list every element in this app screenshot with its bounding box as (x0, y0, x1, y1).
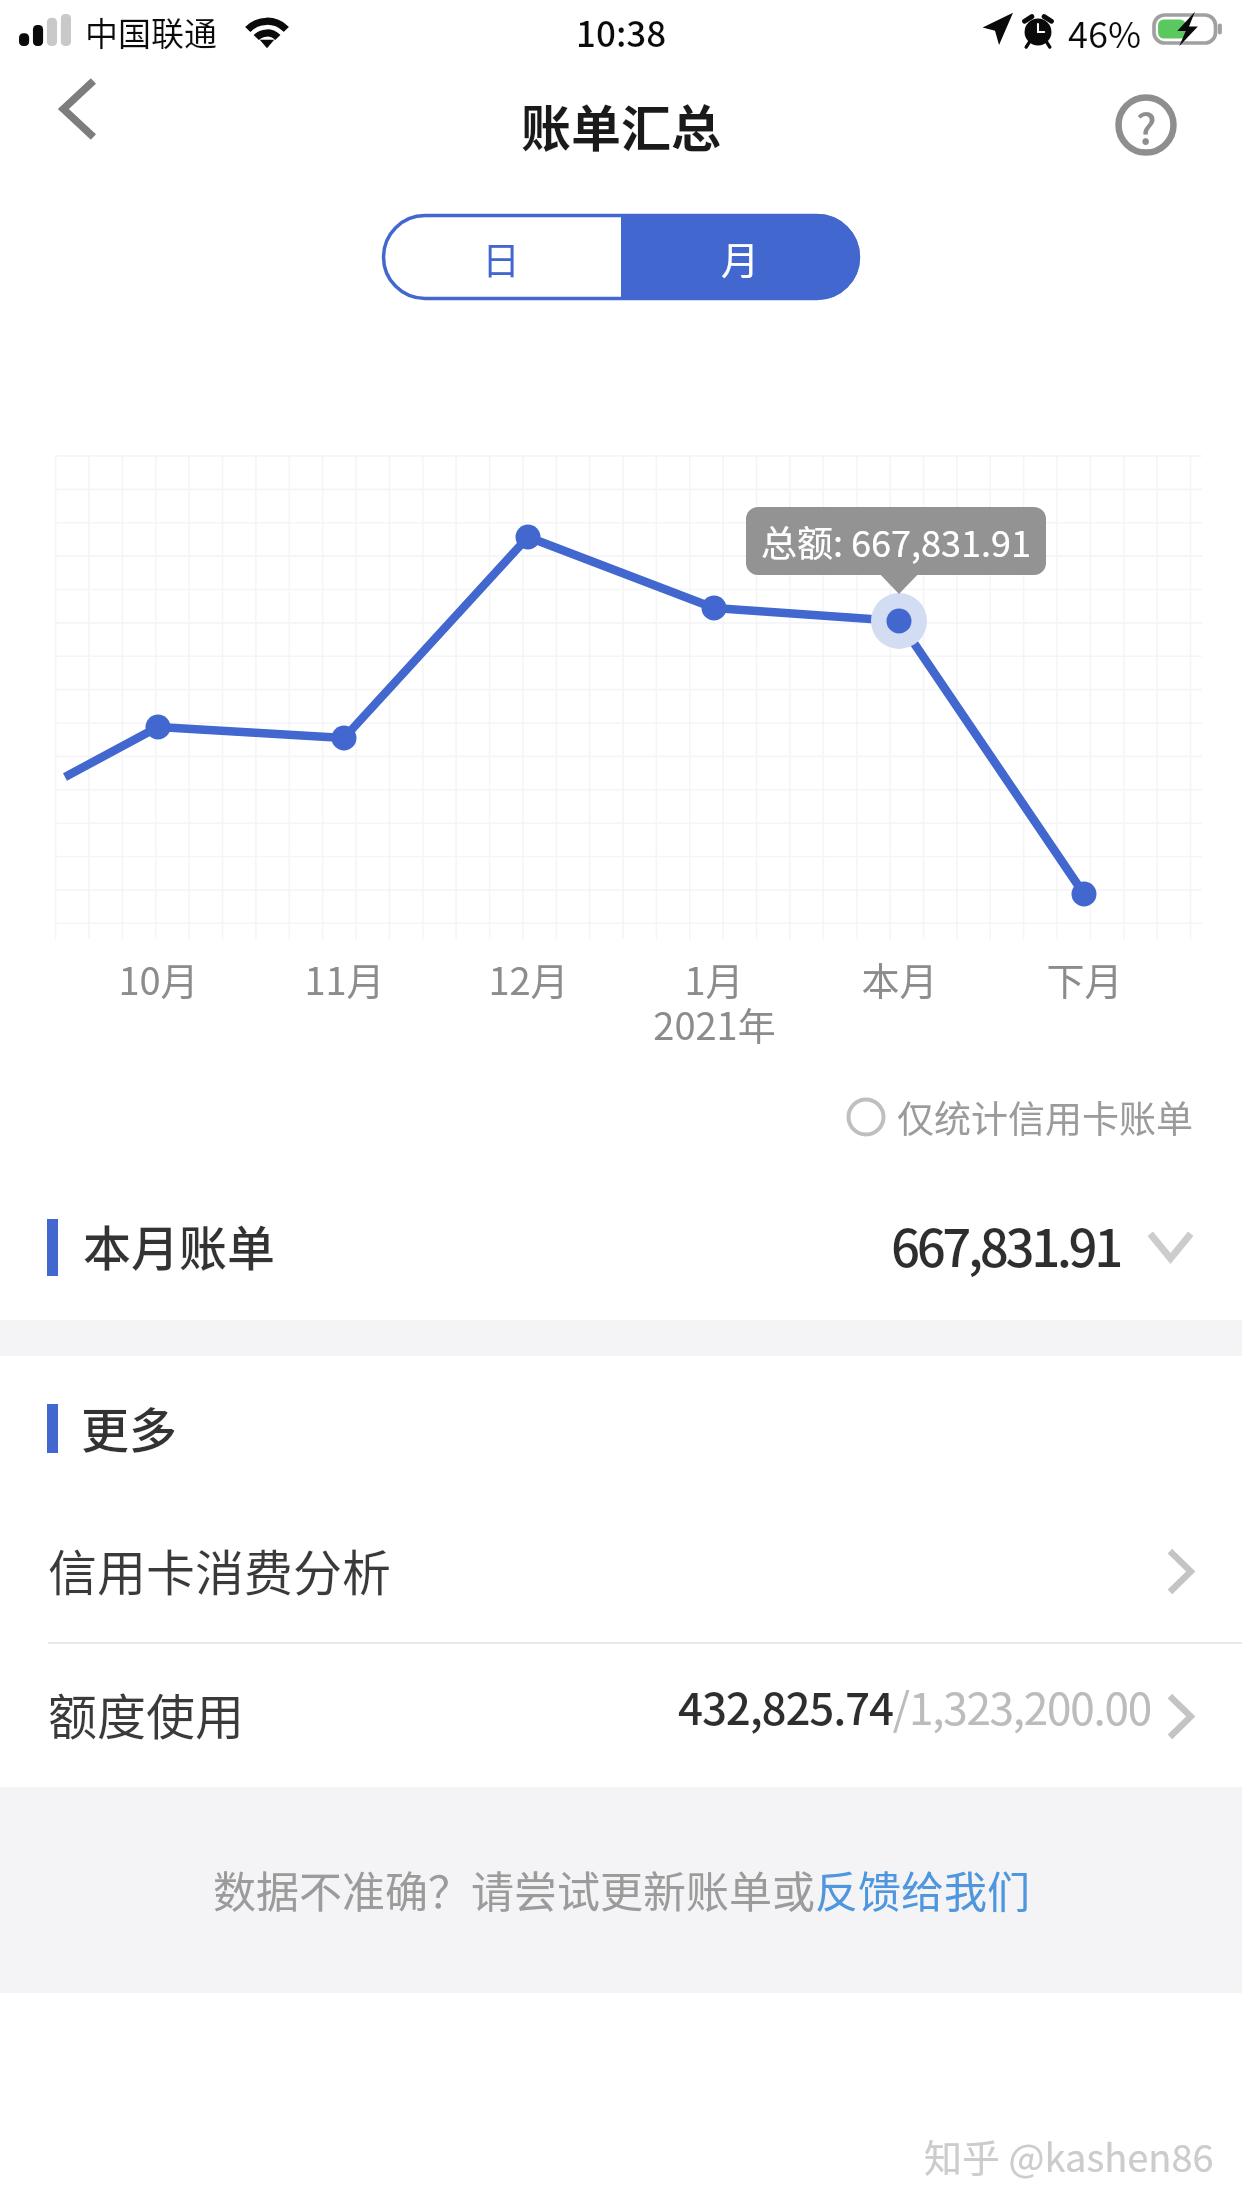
staticText: 12月 (488, 951, 569, 1006)
staticText: 667,831.91 (891, 1208, 1120, 1282)
staticText: 更多 (81, 1392, 178, 1462)
staticText: 本月 (861, 951, 938, 1006)
staticText: 10月 (118, 951, 199, 1006)
button[interactable]: Help (1106, 85, 1186, 165)
button[interactable]: Back (18, 62, 136, 172)
button[interactable]: 日 (382, 214, 621, 300)
staticText: 432,825.74/1,323,200.00 (678, 1674, 1151, 1738)
staticText: 本月账单 (83, 1210, 276, 1280)
staticText: 日 (482, 230, 521, 285)
staticText: 反馈给我们 (815, 1858, 1030, 1920)
staticText: 仅统计信用卡账单 (897, 1090, 1193, 1144)
staticText: 知乎 @kashen86 (924, 2128, 1214, 2183)
staticText: 数据不准确？请尝试更新账单或 (213, 1858, 815, 1920)
staticText: 2021年 (653, 996, 776, 1051)
button[interactable]: 反馈给我们 (815, 1858, 1030, 1920)
button[interactable]: 信用卡消费分析 (0, 1516, 1242, 1626)
staticText: 信用卡消费分析 (48, 1534, 392, 1605)
staticText: 46% (1068, 6, 1142, 52)
staticText: 总额: 667,831.91 (761, 515, 1031, 567)
staticText: 1月 (684, 951, 744, 1006)
staticText: 账单汇总 (521, 89, 721, 161)
staticText: 中国联通 (85, 8, 217, 54)
staticText: 10:38 (576, 6, 667, 52)
staticText: 11月 (304, 951, 385, 1006)
staticText: 额度使用 (48, 1678, 245, 1749)
button[interactable]: 本月账单 (0, 1192, 1242, 1302)
button[interactable]: 额度使用 (0, 1651, 1242, 1761)
staticText: 下月 (1046, 951, 1123, 1006)
button[interactable]: 仅统计信用卡账单 (846, 1090, 1193, 1144)
staticText: ? (1136, 95, 1157, 156)
button[interactable]: 月 (621, 214, 860, 300)
staticText: 月 (721, 230, 760, 285)
